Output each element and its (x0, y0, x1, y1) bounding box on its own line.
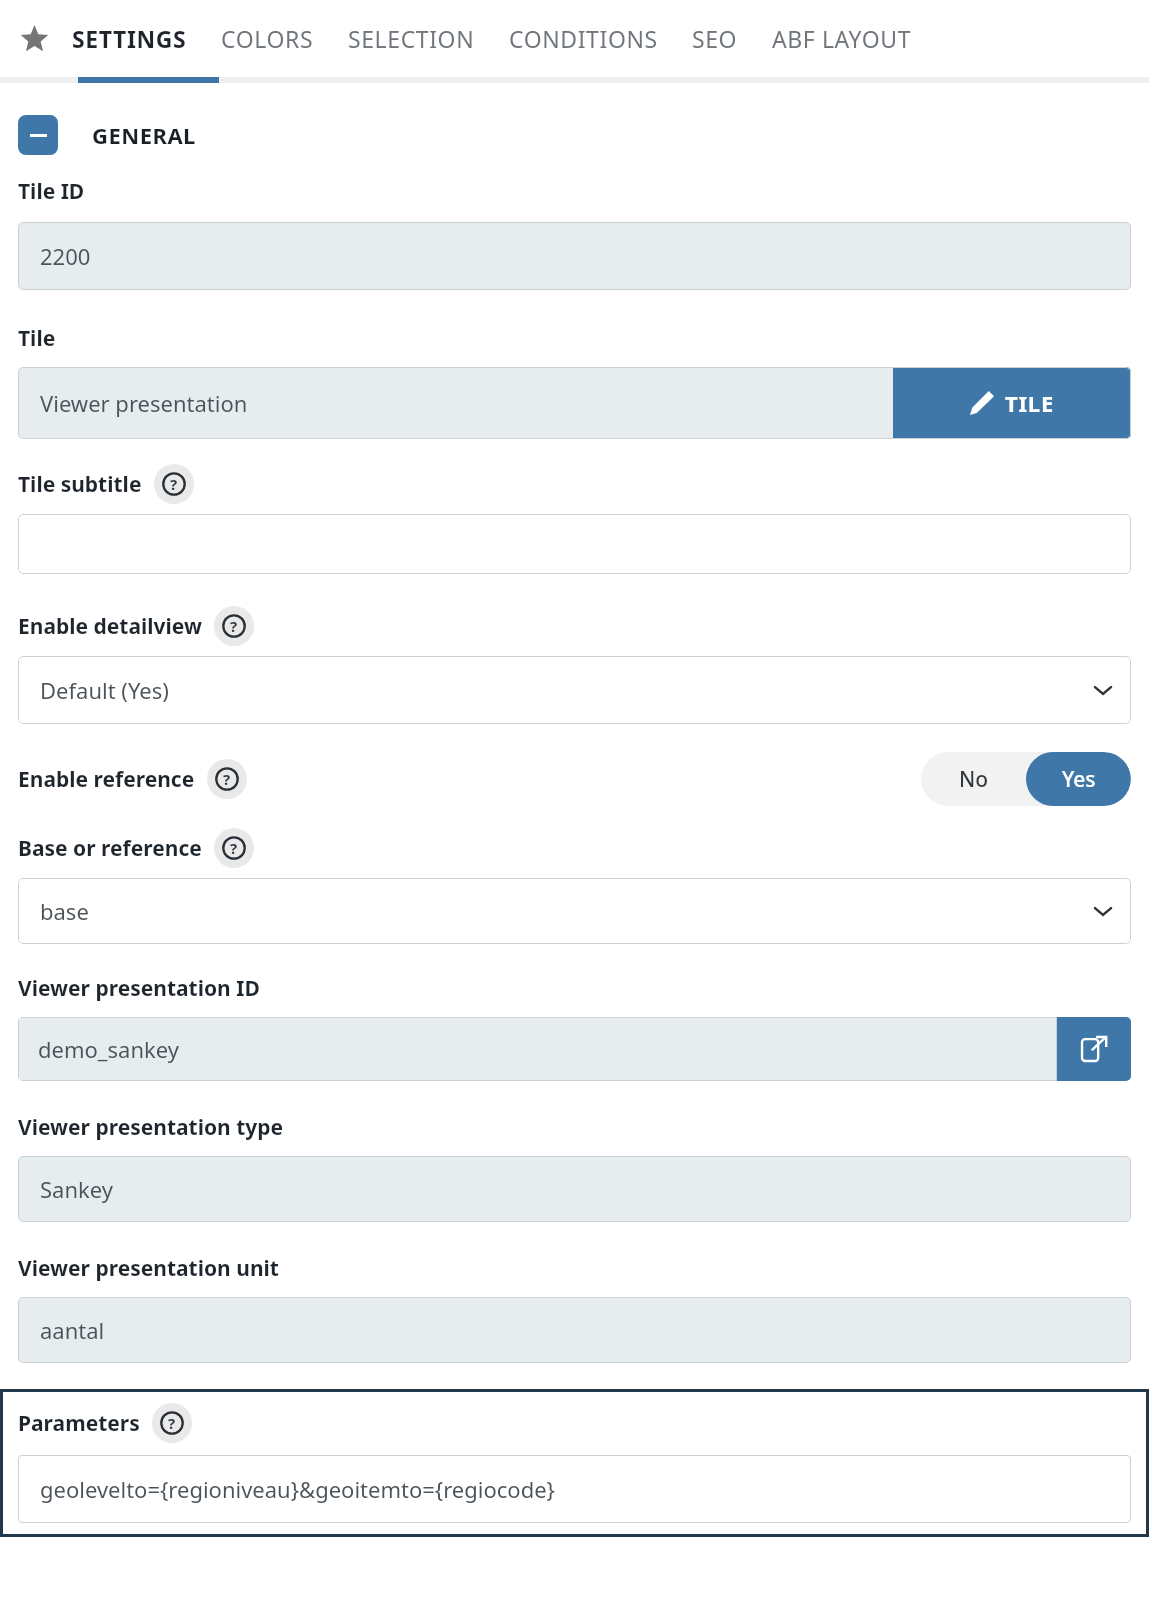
button[interactable]: Favorite (14, 19, 54, 59)
button[interactable]: Viewer presentation (18, 367, 893, 439)
staticText: SELECTION (348, 23, 475, 54)
button[interactable]: Open viewer presentation (1057, 1017, 1131, 1081)
staticText: CONDITIONS (509, 23, 658, 54)
button[interactable]: Help (154, 464, 194, 504)
button[interactable]: SELECTION (348, 0, 475, 77)
button[interactable]: Collapse General section (18, 115, 58, 155)
staticText: geolevelto={regioniveau}&geoitemto={regi… (40, 1474, 555, 1504)
staticText: Yes (1062, 765, 1096, 794)
button[interactable] (18, 514, 1131, 574)
staticText: Viewer presentation ID (18, 974, 260, 1003)
button[interactable]: demo_sankey (18, 1017, 1057, 1081)
staticText: Tile ID (18, 177, 85, 206)
staticText: aantal (40, 1315, 105, 1345)
staticText: base (40, 896, 89, 926)
button[interactable]: ABF LAYOUT (772, 0, 912, 77)
button[interactable]: Help (207, 759, 247, 799)
staticText: COLORS (221, 23, 314, 54)
staticText: No (959, 765, 989, 794)
button[interactable]: 2200 (18, 222, 1131, 290)
button[interactable]: geolevelto={regioniveau}&geoitemto={regi… (18, 1455, 1131, 1523)
staticText: Viewer presentation unit (18, 1254, 279, 1283)
button[interactable]: COLORS (221, 0, 314, 77)
button[interactable]: Sankey (18, 1156, 1131, 1222)
staticText: GENERAL (92, 120, 196, 150)
button[interactable]: SEO (692, 0, 738, 77)
button[interactable]: aantal (18, 1297, 1131, 1363)
staticText: Viewer presentation type (18, 1113, 284, 1142)
button[interactable]: No (921, 752, 1026, 806)
staticText: SETTINGS (72, 23, 187, 54)
staticText: ? (230, 616, 238, 636)
button[interactable]: TILE (893, 367, 1131, 439)
button[interactable]: Help (152, 1403, 192, 1443)
staticText: demo_sankey (38, 1034, 179, 1064)
button[interactable]: Help (214, 828, 254, 868)
staticText: ABF LAYOUT (772, 23, 912, 54)
staticText: SEO (692, 23, 738, 54)
staticText: ? (223, 769, 231, 789)
button[interactable]: Default (Yes) (18, 656, 1131, 724)
staticText: Sankey (40, 1174, 113, 1204)
staticText: Tile subtitle (18, 470, 142, 499)
staticText: Parameters (18, 1409, 140, 1438)
staticText: 2200 (40, 241, 91, 271)
staticText: Enable detailview (18, 612, 202, 641)
staticText: Viewer presentation (40, 388, 248, 418)
staticText: ? (230, 838, 238, 858)
staticText: Default (Yes) (40, 675, 169, 705)
staticText: ? (170, 474, 178, 494)
staticText: Tile (18, 324, 56, 353)
button[interactable]: Help (214, 606, 254, 646)
button[interactable]: Yes (1026, 752, 1131, 806)
staticText: ? (168, 1413, 176, 1433)
staticText: Enable reference (18, 765, 195, 794)
staticText: TILE (1005, 388, 1055, 418)
button[interactable]: SETTINGS (72, 0, 187, 77)
staticText: Base or reference (18, 834, 202, 863)
button[interactable]: base (18, 878, 1131, 944)
button[interactable]: CONDITIONS (509, 0, 658, 77)
